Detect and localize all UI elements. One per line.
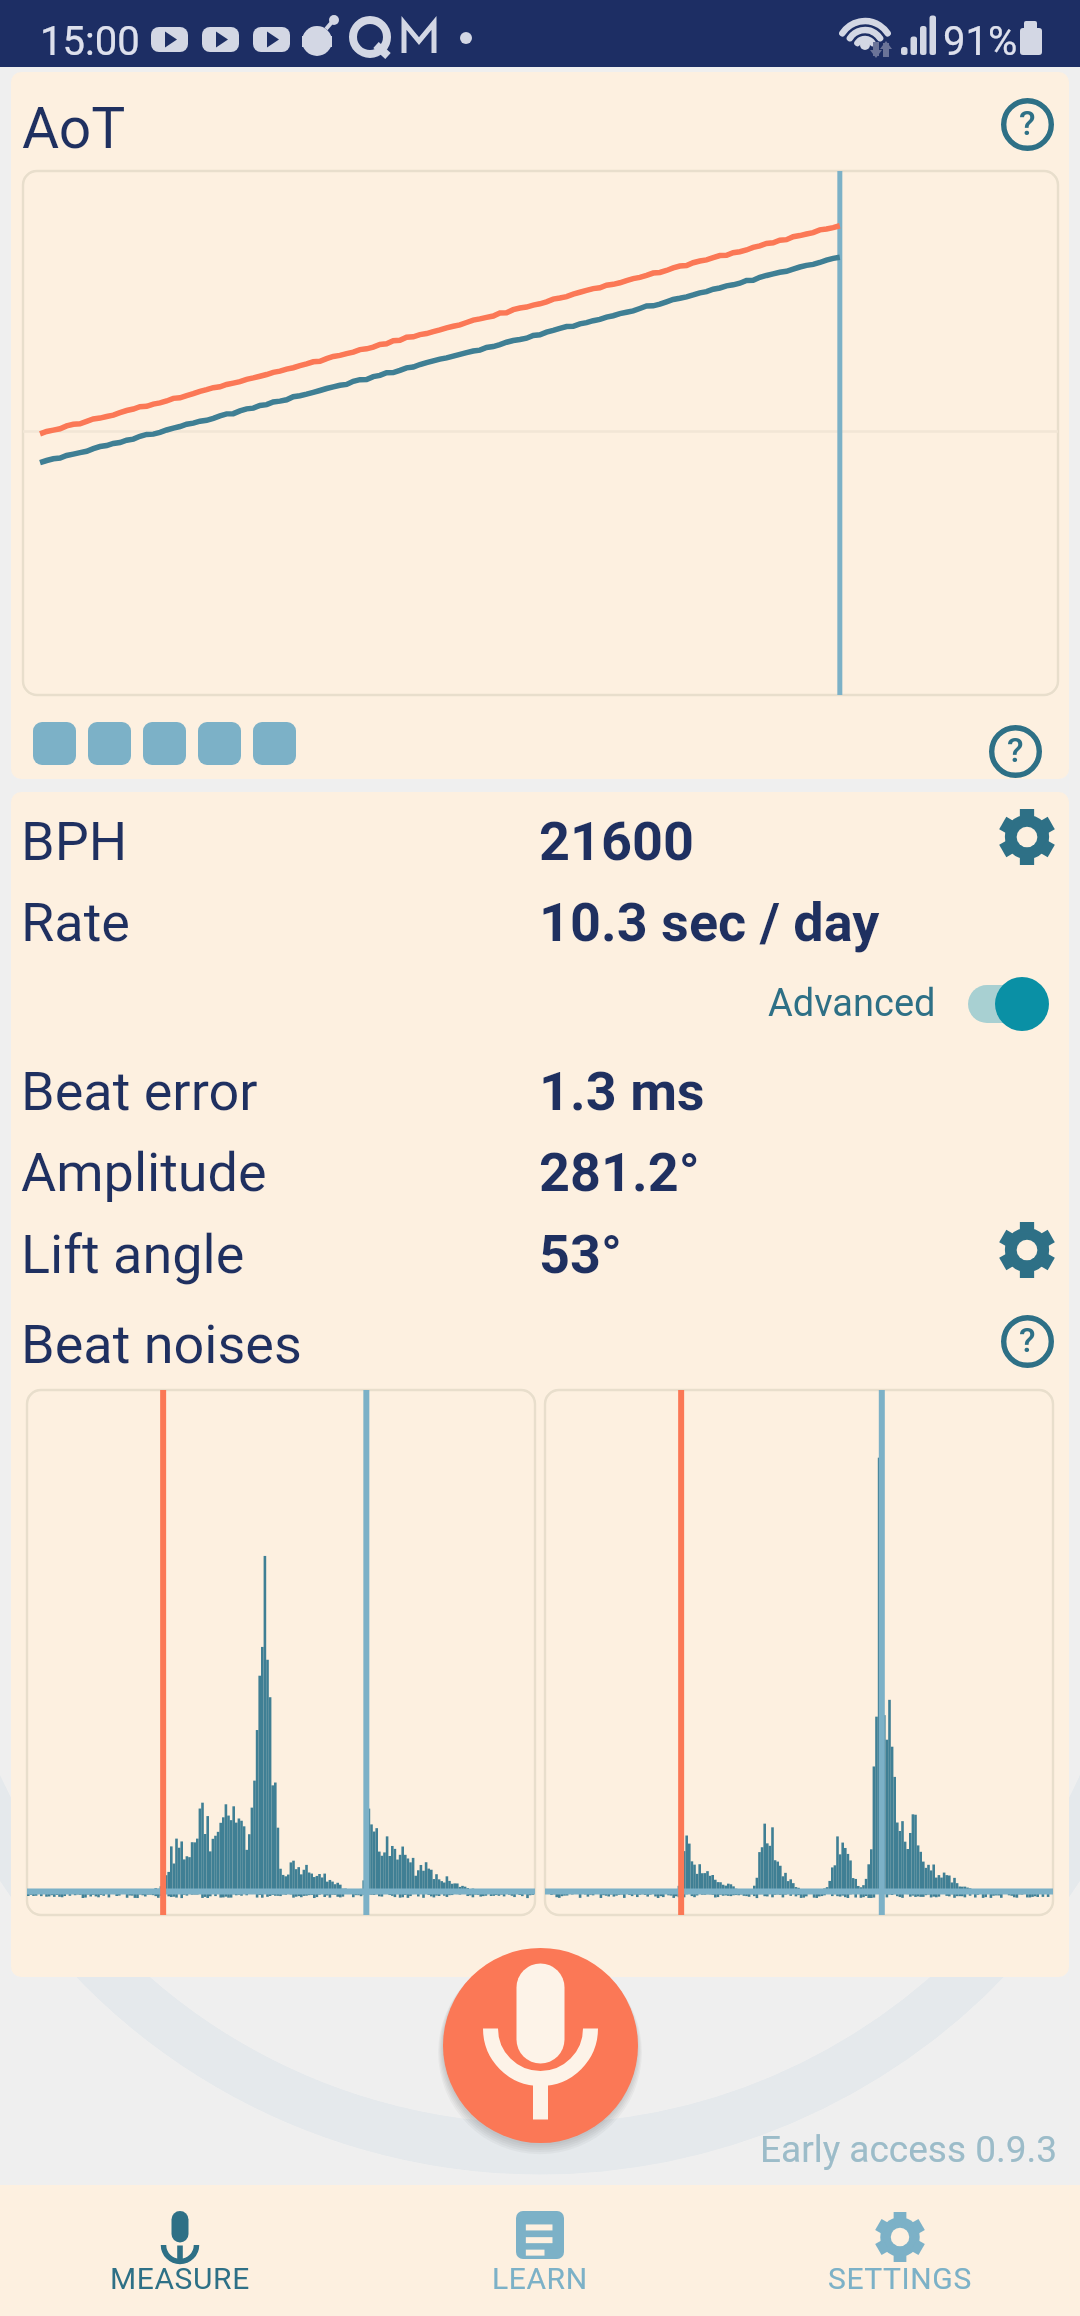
staticText: Amplitude — [21, 1141, 267, 1204]
button[interactable]: Lift angle — [11, 1213, 1069, 1295]
staticText: Advanced — [768, 981, 936, 1026]
button[interactable]: Record — [443, 1948, 638, 2143]
staticText: Lift angle — [21, 1223, 245, 1286]
staticText: 91% — [943, 18, 1018, 65]
button[interactable]: Settings — [999, 1222, 1055, 1278]
button[interactable]: Beat slot 2 — [88, 722, 131, 765]
staticText: 21600 — [539, 810, 694, 873]
staticText: 15:00 — [40, 18, 140, 65]
button[interactable]: SETTINGS — [720, 2185, 1080, 2316]
button[interactable]: Beat noise chart — [27, 1390, 535, 1915]
button[interactable]: Help — [995, 92, 1059, 156]
button[interactable]: Beat slot 1 — [33, 722, 76, 765]
staticText: 10.3 sec / day — [539, 891, 880, 954]
button[interactable]: Beat slot 5 — [253, 722, 296, 765]
button[interactable]: Help — [983, 719, 1047, 779]
staticText: BPH — [21, 810, 128, 873]
button[interactable]: Help — [995, 1309, 1059, 1373]
staticText: ? — [1019, 1320, 1036, 1360]
staticText: SETTINGS — [828, 2261, 972, 2296]
button[interactable]: Beat slot 3 — [143, 722, 186, 765]
button[interactable]: MEASURE — [0, 2185, 360, 2316]
staticText: Early access 0.9.3 — [760, 2128, 1058, 2171]
button[interactable]: Amplitude — [11, 1131, 1069, 1213]
staticText: 1.3 ms — [539, 1060, 705, 1123]
staticText: Rate — [21, 891, 130, 954]
staticText: AoT — [22, 95, 126, 162]
staticText: 281.2° — [539, 1141, 700, 1204]
staticText: LEARN — [492, 2261, 588, 2296]
button[interactable]: Beat error — [11, 1050, 1069, 1132]
staticText: MEASURE — [110, 2261, 250, 2296]
staticText: ? — [1007, 730, 1024, 770]
staticText: Beat error — [21, 1060, 258, 1123]
button[interactable]: Rate — [11, 881, 1069, 963]
staticText: ? — [1019, 103, 1036, 143]
button[interactable]: Beat noise chart — [545, 1390, 1053, 1915]
button[interactable]: Advanced — [764, 969, 1057, 1039]
button[interactable]: BPH — [11, 800, 1069, 882]
button[interactable]: LEARN — [360, 2185, 720, 2316]
button[interactable]: Beat slot 4 — [198, 722, 241, 765]
staticText: Beat noises — [21, 1313, 302, 1376]
button[interactable]: Settings — [999, 809, 1055, 865]
staticText: 53° — [539, 1223, 622, 1286]
